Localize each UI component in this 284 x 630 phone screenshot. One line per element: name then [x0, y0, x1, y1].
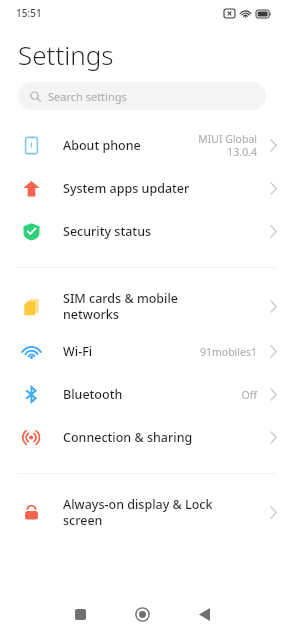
staticText: MIUI Global 13.0.4 — [198, 132, 257, 159]
staticText: Security status — [63, 223, 256, 240]
staticText: Settings — [18, 37, 114, 72]
staticText: SIM cards & mobile networks — [63, 290, 256, 322]
staticText: 15:51 — [16, 6, 42, 20]
button[interactable]: System apps updater — [0, 167, 284, 210]
staticText: System apps updater — [63, 180, 256, 197]
button[interactable]: Bluetooth — [0, 373, 284, 416]
button[interactable]: Security status — [0, 210, 284, 253]
button[interactable]: Home — [111, 598, 173, 630]
button[interactable]: Connection & sharing — [0, 416, 284, 459]
button[interactable]: Always-on display & Lock screen — [0, 488, 284, 536]
button[interactable]: Recents — [49, 598, 111, 630]
staticText: Wi-Fi — [63, 343, 193, 360]
staticText: Search settings — [48, 89, 127, 104]
button[interactable]: Search settings — [18, 82, 266, 110]
staticText: 91mobiles1 — [199, 345, 257, 359]
staticText: Off — [241, 388, 257, 402]
staticText: Always-on display & Lock screen — [63, 496, 256, 528]
button[interactable]: Wi-Fi — [0, 330, 284, 373]
button[interactable]: Back — [173, 598, 235, 630]
staticText: About phone — [63, 137, 192, 154]
staticText: Bluetooth — [63, 386, 235, 403]
staticText: Connection & sharing — [63, 429, 256, 446]
button[interactable]: About phone — [0, 124, 284, 167]
button[interactable]: SIM cards & mobile networks — [0, 282, 284, 330]
